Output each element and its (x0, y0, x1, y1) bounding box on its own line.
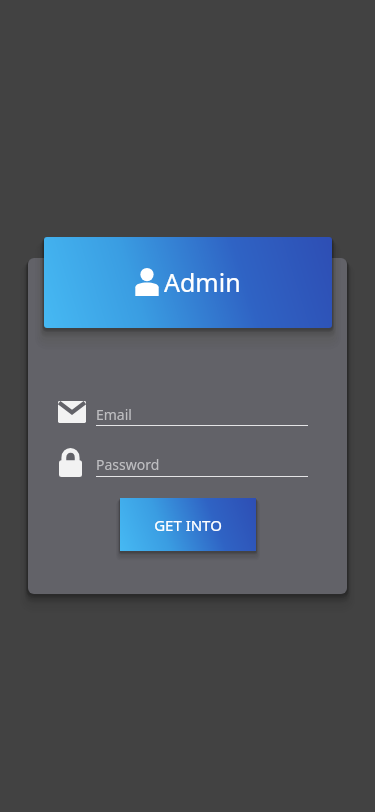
staticText: Password (96, 455, 160, 474)
button[interactable]: Password (96, 452, 308, 476)
button[interactable]: GET INTO (120, 498, 256, 551)
button[interactable]: Email (96, 402, 308, 426)
staticText: Email (96, 405, 132, 424)
other: Email (58, 401, 86, 423)
staticText: GET INTO (154, 515, 222, 535)
staticText: Admin (164, 265, 241, 299)
other: Password (59, 449, 82, 477)
